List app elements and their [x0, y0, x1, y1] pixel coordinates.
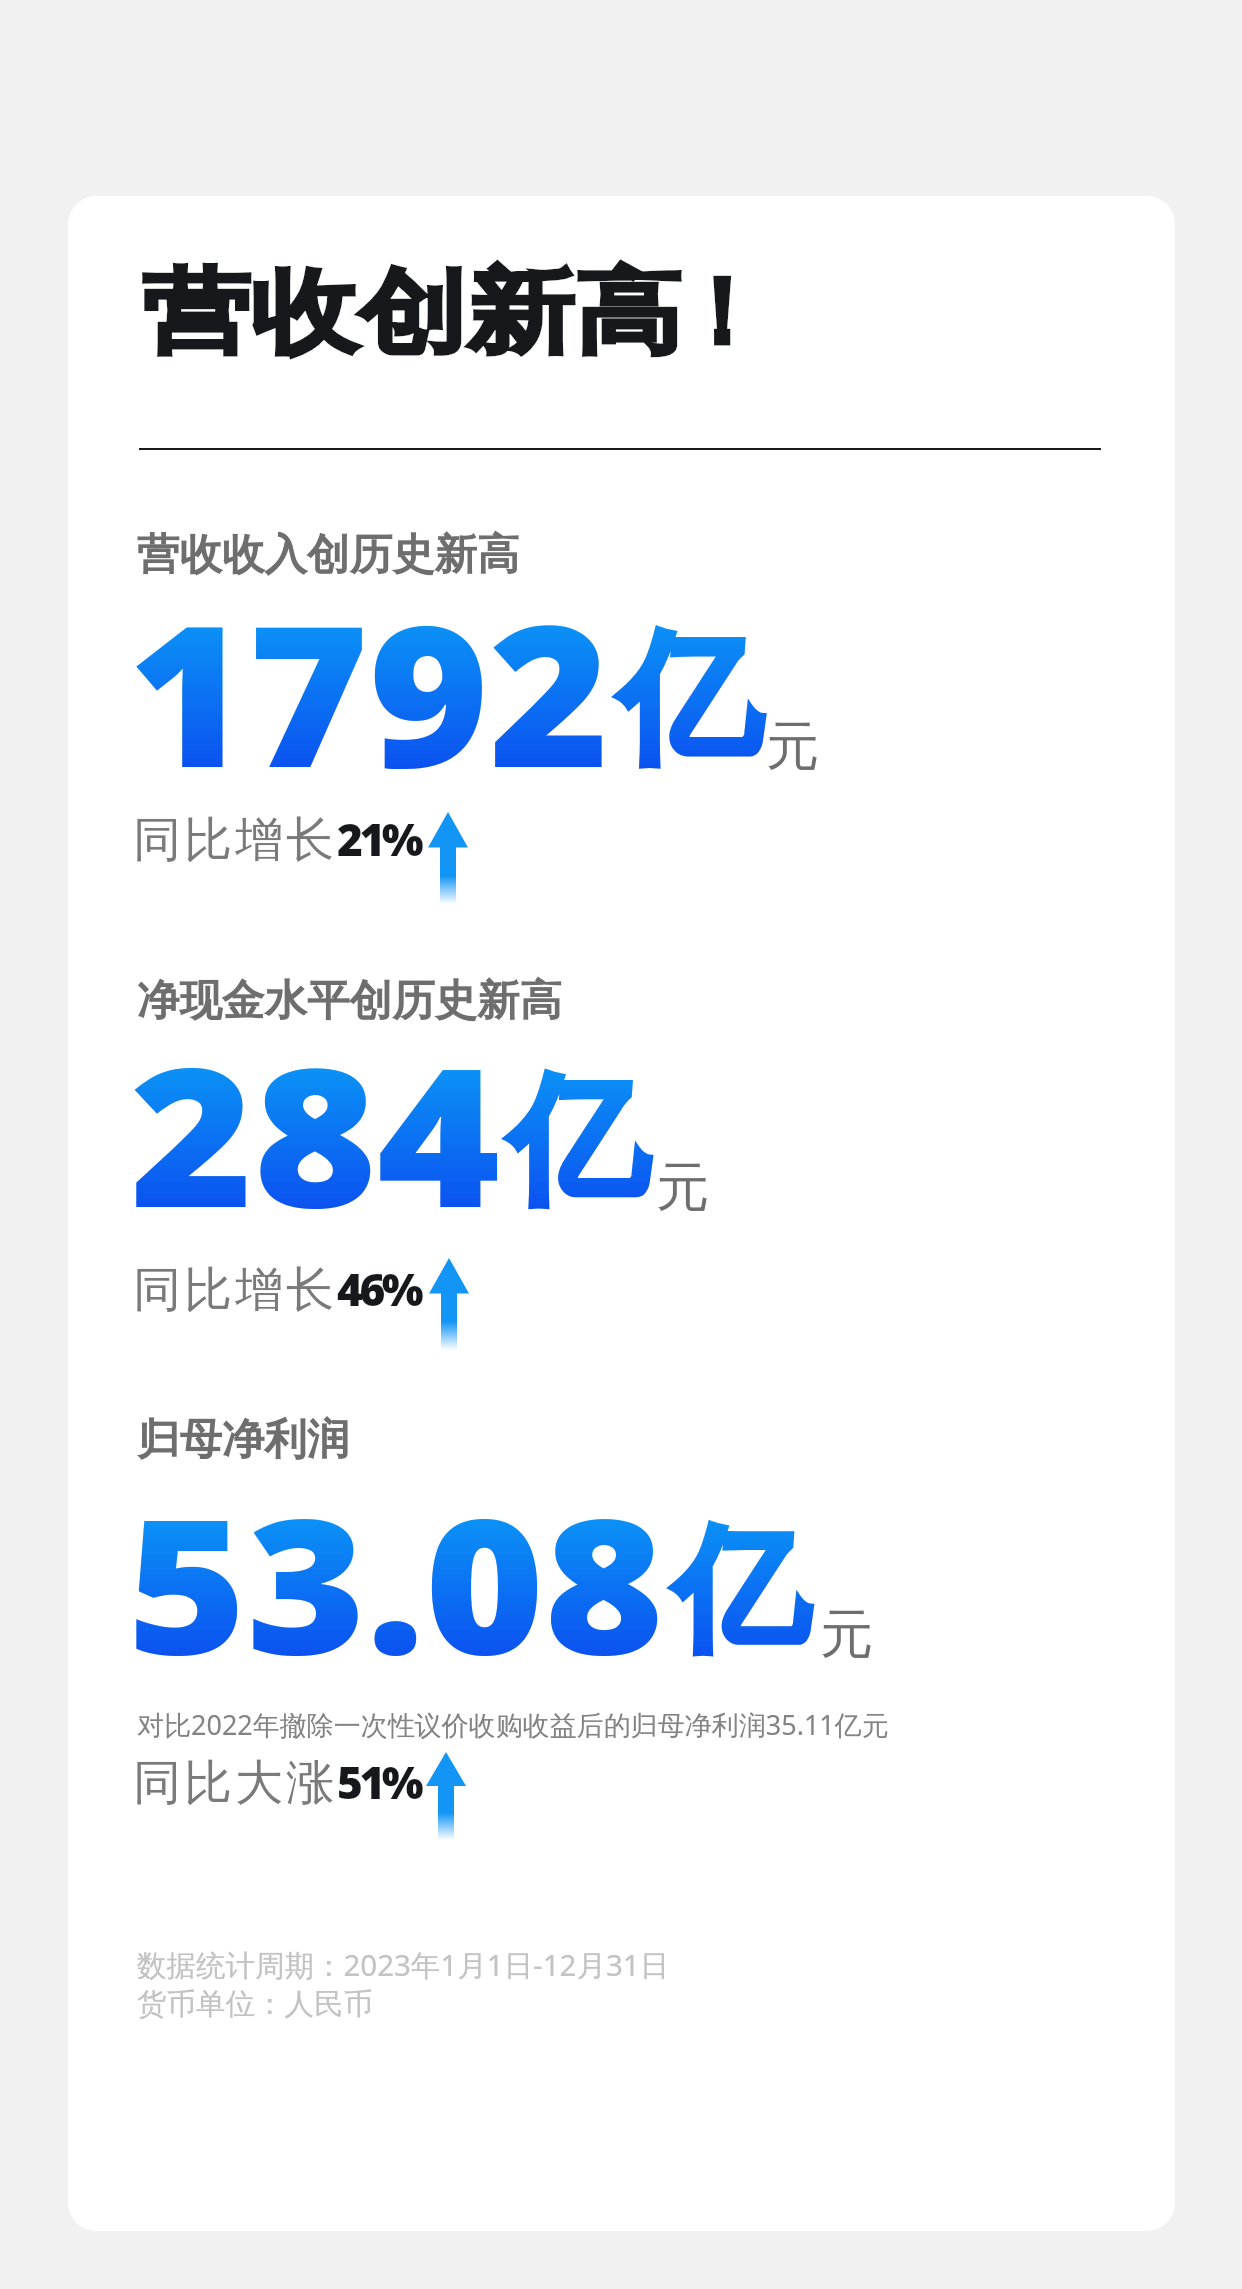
staticText: 归母净利润: [137, 1413, 350, 1467]
staticText: 元: [820, 1601, 873, 1668]
staticText: 亿: [618, 610, 760, 789]
staticText: 同比大涨51%: [133, 1752, 421, 1813]
staticText: 53.08: [127, 1455, 664, 1709]
staticText: 元: [766, 713, 819, 780]
button[interactable]: 营收创新高: [68, 196, 1175, 2231]
staticText: 同比增长21%: [133, 809, 421, 870]
staticText: 货币单位：人民币: [137, 1986, 373, 2023]
staticText: 1792: [128, 557, 610, 824]
staticText: ！: [675, 255, 767, 371]
staticText: 对比2022年撤除一次性议价收购收益后的归母净利润35.11亿元: [137, 1706, 889, 1743]
staticText: 净现金水平创历史新高: [137, 974, 562, 1028]
staticText: 亿: [508, 1054, 648, 1229]
button[interactable]: 同比增长46%: [133, 1259, 421, 1320]
button[interactable]: 同比大涨51%: [133, 1752, 421, 1813]
other: Growth up: [429, 1258, 469, 1350]
staticText: 同比增长46%: [133, 1259, 421, 1320]
staticText: 营收创新高: [142, 255, 682, 371]
other: Growth up: [428, 812, 468, 904]
staticText: 元: [656, 1154, 709, 1221]
staticText: 数据统计周期：2023年1月1日-12月31日: [137, 1944, 670, 1984]
button[interactable]: 同比增长21%: [133, 809, 421, 870]
staticText: 营收收入创历史新高: [137, 528, 520, 582]
staticText: 284: [130, 1002, 501, 1263]
other: Growth up: [426, 1752, 466, 1840]
staticText: 亿: [673, 1506, 809, 1676]
